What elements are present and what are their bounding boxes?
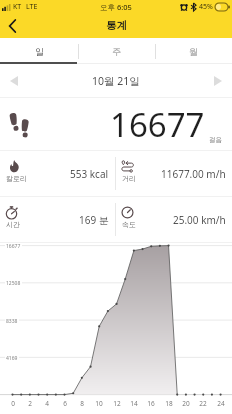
staticText: 월 bbox=[189, 46, 198, 57]
staticText: 12508 bbox=[6, 280, 21, 287]
staticText: 16677 bbox=[110, 102, 205, 147]
button[interactable]: 시간 bbox=[0, 197, 115, 242]
staticText: 10월 21일 bbox=[92, 74, 140, 88]
staticText: 22 bbox=[197, 399, 209, 408]
button[interactable]: 속도 bbox=[116, 197, 232, 242]
staticText: 25.00 km/h bbox=[173, 213, 226, 227]
staticText: 일 bbox=[35, 46, 44, 57]
button[interactable]: 거리 bbox=[116, 151, 232, 196]
staticText: 8338 bbox=[6, 318, 18, 325]
staticText: 553 kcal bbox=[70, 167, 109, 181]
staticText: 거리 bbox=[122, 174, 136, 183]
button[interactable]: Previous day bbox=[4, 71, 24, 91]
staticText: 2 bbox=[24, 399, 36, 408]
staticText: 14 bbox=[128, 399, 140, 408]
staticText: 6 bbox=[59, 399, 71, 408]
staticText: LTE bbox=[26, 2, 38, 12]
button[interactable]: 칼로리 bbox=[0, 151, 115, 196]
staticText: 4169 bbox=[6, 355, 18, 362]
staticText: 4 bbox=[41, 399, 53, 408]
staticText: 169 분 bbox=[79, 213, 109, 227]
button[interactable]: 주 bbox=[78, 38, 155, 64]
staticText: 오후 6:05 bbox=[100, 2, 132, 12]
staticText: 12 bbox=[111, 399, 123, 408]
staticText: 0 bbox=[7, 399, 19, 408]
staticText: 속도 bbox=[122, 220, 136, 229]
staticText: 16 bbox=[145, 399, 157, 408]
staticText: 18 bbox=[163, 399, 175, 408]
staticText: 칼로리 bbox=[6, 174, 27, 183]
button[interactable]: Back bbox=[0, 13, 25, 38]
staticText: 걸음 bbox=[209, 136, 222, 144]
staticText: 통계 bbox=[106, 19, 127, 32]
staticText: 10 bbox=[93, 399, 105, 408]
button[interactable]: 일 bbox=[0, 38, 78, 64]
button[interactable]: 16677 bbox=[0, 98, 232, 151]
button[interactable]: 월 bbox=[155, 38, 232, 64]
staticText: 24 bbox=[215, 399, 227, 408]
staticText: 8 bbox=[76, 399, 88, 408]
staticText: 45% bbox=[199, 2, 213, 12]
staticText: 16677 bbox=[6, 243, 21, 250]
staticText: 주 bbox=[112, 46, 121, 57]
staticText: 11677.00 m/h bbox=[161, 167, 226, 181]
button[interactable]: Next day bbox=[208, 71, 228, 91]
staticText: 시간 bbox=[6, 220, 20, 229]
staticText: 20 bbox=[180, 399, 192, 408]
staticText: KT bbox=[13, 2, 22, 12]
